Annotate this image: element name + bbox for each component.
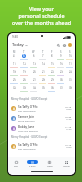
button[interactable]: Search bbox=[56, 43, 60, 47]
button[interactable]: 37 bbox=[56, 86, 65, 93]
button[interactable]: 33 bbox=[19, 86, 29, 93]
button[interactable]: Today bbox=[11, 42, 29, 48]
staticText: Mercy Hospital · GOVO Except bbox=[11, 97, 48, 101]
staticText: 38 bbox=[69, 86, 72, 90]
button[interactable]: 16 bbox=[56, 62, 65, 70]
staticText: 20 bbox=[33, 70, 36, 74]
button[interactable]: 26 bbox=[19, 78, 29, 86]
staticText: personal schedule bbox=[18, 12, 65, 19]
button[interactable]: 29 bbox=[47, 78, 56, 86]
staticText: 23 bbox=[60, 70, 63, 74]
button[interactable]: 32 bbox=[9, 86, 19, 93]
button[interactable]: 17 bbox=[65, 62, 74, 70]
staticText: 12 bbox=[23, 62, 26, 66]
button[interactable]: Day bbox=[8, 157, 24, 170]
staticText: 11:00 bbox=[66, 118, 72, 121]
button[interactable]: 11 bbox=[9, 62, 19, 70]
button[interactable]: 27 bbox=[29, 78, 38, 86]
staticText: 11 bbox=[13, 62, 16, 66]
button[interactable]: Sa Taffy O'Ffic bbox=[8, 141, 75, 151]
button[interactable]: 21 bbox=[38, 70, 47, 78]
staticText: Month bbox=[63, 165, 70, 168]
staticText: 12:45 bbox=[66, 146, 72, 149]
staticText: 11:15 bbox=[65, 125, 72, 128]
button[interactable]: 7 bbox=[38, 54, 47, 62]
staticText: 9:30 bbox=[12, 35, 18, 39]
button[interactable]: 3 days bbox=[24, 157, 41, 170]
staticText: 4 bbox=[13, 54, 15, 58]
button[interactable]: 24 bbox=[65, 70, 74, 78]
button[interactable]: 18 bbox=[9, 70, 19, 78]
staticText: Today bbox=[12, 42, 24, 48]
staticText: 33 bbox=[23, 86, 26, 90]
staticText: 25 bbox=[13, 78, 16, 82]
staticText: 8 bbox=[51, 54, 53, 58]
button[interactable]: 12 bbox=[19, 62, 29, 70]
staticText: 30 bbox=[60, 78, 63, 82]
staticText: Tanner Join bbox=[18, 115, 35, 119]
staticText: W bbox=[32, 50, 35, 54]
button[interactable]: 36 bbox=[47, 86, 56, 93]
button[interactable]: 30 bbox=[56, 78, 65, 86]
button[interactable]: 31 bbox=[65, 78, 74, 86]
button[interactable]: 35 bbox=[38, 86, 47, 93]
button[interactable]: Calendar view bbox=[62, 43, 66, 47]
staticText: M bbox=[13, 50, 16, 54]
button[interactable]: Week bbox=[41, 157, 58, 170]
staticText: Mercy Hospital · GOVO Except bbox=[11, 135, 48, 139]
staticText: 18 bbox=[13, 70, 16, 74]
button[interactable]: 5 bbox=[19, 54, 29, 62]
staticText: 12:15 bbox=[65, 143, 72, 146]
staticText: Sa Taffy O'Ffic bbox=[18, 143, 38, 147]
staticText: 24 bbox=[69, 70, 72, 74]
staticText: 21 bbox=[42, 70, 45, 74]
button[interactable]: 9 bbox=[56, 54, 65, 62]
staticText: 37 bbox=[60, 86, 63, 90]
staticText: Day descripting bbox=[18, 109, 36, 112]
staticText: Sa Taffy O'Ffic bbox=[18, 105, 38, 109]
button[interactable]: 13 bbox=[29, 62, 38, 70]
staticText: 13 bbox=[33, 62, 36, 66]
button[interactable]: 38 bbox=[65, 86, 74, 93]
staticText: 22 bbox=[51, 70, 54, 74]
staticText: 10 bbox=[69, 54, 72, 58]
staticText: 15 bbox=[51, 62, 54, 66]
staticText: 17 bbox=[69, 62, 72, 66]
button[interactable]: 8 bbox=[47, 54, 56, 62]
button[interactable]: 19 bbox=[19, 70, 29, 78]
staticText: Day descripting bbox=[18, 147, 36, 150]
staticText: S bbox=[60, 50, 62, 54]
staticText: View your bbox=[29, 5, 54, 12]
button[interactable]: 14 bbox=[38, 62, 47, 70]
staticText: Bring dibruzzu bbox=[18, 119, 35, 122]
staticText: 11:45 bbox=[66, 128, 72, 131]
button[interactable]: Bobby June bbox=[8, 123, 75, 133]
button[interactable]: 34 bbox=[29, 86, 38, 93]
button[interactable]: 15 bbox=[47, 62, 56, 70]
button[interactable]: 6 bbox=[29, 54, 38, 62]
staticText: 10:30 bbox=[65, 115, 72, 118]
staticText: 16 bbox=[60, 62, 63, 66]
staticText: 19 bbox=[23, 70, 26, 74]
staticText: 31 bbox=[69, 78, 72, 82]
staticText: Day bbox=[14, 165, 18, 168]
staticText: 35 bbox=[42, 86, 45, 90]
staticText: Bobby June bbox=[18, 125, 35, 129]
button[interactable]: 22 bbox=[47, 70, 56, 78]
staticText: 10:15 bbox=[65, 105, 72, 108]
button[interactable]: Sa Taffy O'Ffic bbox=[8, 103, 75, 113]
button[interactable]: 4 bbox=[9, 54, 19, 62]
button[interactable]: 28 bbox=[38, 78, 47, 86]
button[interactable]: Tanner Join bbox=[8, 113, 75, 123]
button[interactable]: Month bbox=[58, 157, 75, 170]
button[interactable]: 25 bbox=[9, 78, 19, 86]
staticText: S bbox=[69, 50, 71, 54]
button[interactable]: 23 bbox=[56, 70, 65, 78]
button[interactable]: 10 bbox=[65, 54, 74, 62]
staticText: WOK Tea Exercise bbox=[18, 129, 38, 132]
button[interactable]: Account bbox=[68, 43, 72, 47]
staticText: 7 bbox=[42, 54, 44, 58]
staticText: 29 bbox=[51, 78, 54, 82]
button[interactable]: 20 bbox=[29, 70, 38, 78]
staticText: Week bbox=[47, 165, 53, 168]
